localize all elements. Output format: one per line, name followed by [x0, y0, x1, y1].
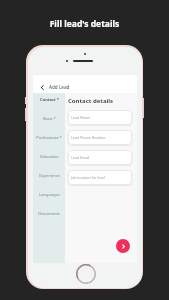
staticText: Add Lead: [49, 84, 70, 90]
button[interactable]: Experience: [33, 169, 65, 182]
staticText: Basic *: [43, 116, 56, 121]
button[interactable]: Lead Phone Number: [68, 130, 132, 145]
staticText: Documents: [38, 211, 60, 216]
button[interactable]: Education: [33, 150, 65, 163]
staticText: Lead Phone Number: [71, 135, 106, 140]
staticText: Lead Name: [71, 115, 91, 120]
staticText: Lead Email: [71, 155, 90, 160]
staticText: Fill lead's details: [0, 18, 169, 30]
button[interactable]: Languages: [33, 188, 65, 201]
staticText: Contact *: [40, 97, 59, 102]
staticText: Job location for lead: [71, 175, 105, 180]
button[interactable]: Contact *: [33, 93, 65, 106]
button[interactable]: Job location for lead: [68, 170, 132, 185]
staticText: Contact details: [68, 97, 114, 105]
button[interactable]: Professiona *: [33, 131, 65, 144]
button[interactable]: Basic *: [33, 112, 65, 125]
staticText: Experience: [39, 173, 60, 178]
button[interactable]: Lead Name: [68, 110, 132, 125]
button[interactable]: Next: [116, 239, 130, 253]
button[interactable]: Back: [39, 84, 46, 91]
button[interactable]: Home: [76, 264, 96, 284]
staticText: Languages: [39, 192, 60, 197]
staticText: Education: [40, 154, 59, 159]
button[interactable]: Documents: [33, 207, 65, 220]
button[interactable]: Lead Email: [68, 150, 132, 165]
staticText: Professiona *: [36, 135, 62, 140]
